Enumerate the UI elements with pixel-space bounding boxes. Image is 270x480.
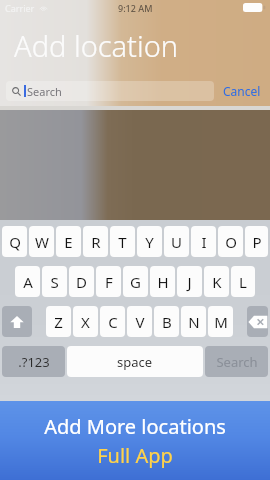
staticText: Z (54, 312, 63, 332)
staticText: J (187, 272, 192, 292)
staticText: 9:12 AM (118, 2, 153, 14)
button[interactable]: N (181, 306, 206, 337)
staticText: P (252, 232, 262, 252)
button[interactable]: W (29, 226, 54, 257)
staticText: T (118, 232, 127, 252)
staticText: V (135, 312, 145, 332)
staticText: Q (9, 232, 21, 252)
staticText: A (23, 272, 33, 292)
staticText: Carrier (5, 2, 35, 14)
staticText: F (105, 272, 113, 292)
staticText: M (214, 312, 228, 332)
button[interactable]: M (208, 306, 233, 337)
staticText: D (76, 272, 87, 292)
staticText: H (157, 272, 169, 292)
staticText: Search (216, 353, 258, 371)
button[interactable]: U (164, 226, 189, 257)
button[interactable]: K (204, 266, 229, 297)
button[interactable]: V (127, 306, 152, 337)
staticText: Cancel (223, 83, 261, 99)
staticText: Search (27, 84, 62, 99)
button[interactable]: X (73, 306, 98, 337)
staticText: O (225, 232, 237, 252)
staticText: X (81, 312, 90, 332)
staticText: I (201, 232, 207, 252)
button[interactable]: Search (205, 346, 268, 377)
button[interactable]: B (154, 306, 179, 337)
button[interactable]: J (177, 266, 202, 297)
button[interactable]: Q (2, 226, 27, 257)
button[interactable]: S (42, 266, 67, 297)
staticText: Full App (97, 442, 173, 469)
button[interactable]: A (15, 266, 40, 297)
button[interactable]: H (150, 266, 175, 297)
button[interactable]: Cancel (220, 79, 264, 103)
button[interactable]: .?123 (2, 346, 65, 377)
button[interactable]: Z (46, 306, 71, 337)
button[interactable]: C (100, 306, 125, 337)
button[interactable]: F (96, 266, 121, 297)
staticText: Add More locations (44, 413, 226, 440)
button[interactable]: R (83, 226, 108, 257)
staticText: R (91, 232, 101, 252)
button[interactable]: G (123, 266, 148, 297)
staticText: .?123 (18, 353, 50, 371)
button[interactable]: Add More locations (0, 401, 270, 480)
staticText: B (162, 312, 172, 332)
button[interactable]: E (56, 226, 81, 257)
staticText: S (50, 272, 59, 292)
staticText: E (64, 232, 73, 252)
button[interactable]: T (110, 226, 135, 257)
button[interactable]: Shift (2, 306, 32, 337)
button[interactable]: L (231, 266, 255, 297)
staticText: K (212, 272, 222, 292)
button[interactable]: Delete (247, 306, 268, 337)
staticText: W (35, 232, 49, 252)
staticText: Y (145, 232, 154, 252)
staticText: Add location (14, 26, 179, 65)
button[interactable]: D (69, 266, 94, 297)
button[interactable]: O (218, 226, 243, 257)
button[interactable]: Search (6, 81, 214, 101)
button[interactable]: I (191, 226, 216, 257)
staticText: G (130, 272, 141, 292)
staticText: U (171, 232, 182, 252)
staticText: space (117, 353, 153, 371)
button[interactable]: space (67, 346, 203, 377)
staticText: C (108, 312, 118, 332)
staticText: N (188, 312, 200, 332)
staticText: L (239, 272, 247, 292)
button[interactable]: Y (137, 226, 162, 257)
button[interactable]: P (245, 226, 268, 257)
